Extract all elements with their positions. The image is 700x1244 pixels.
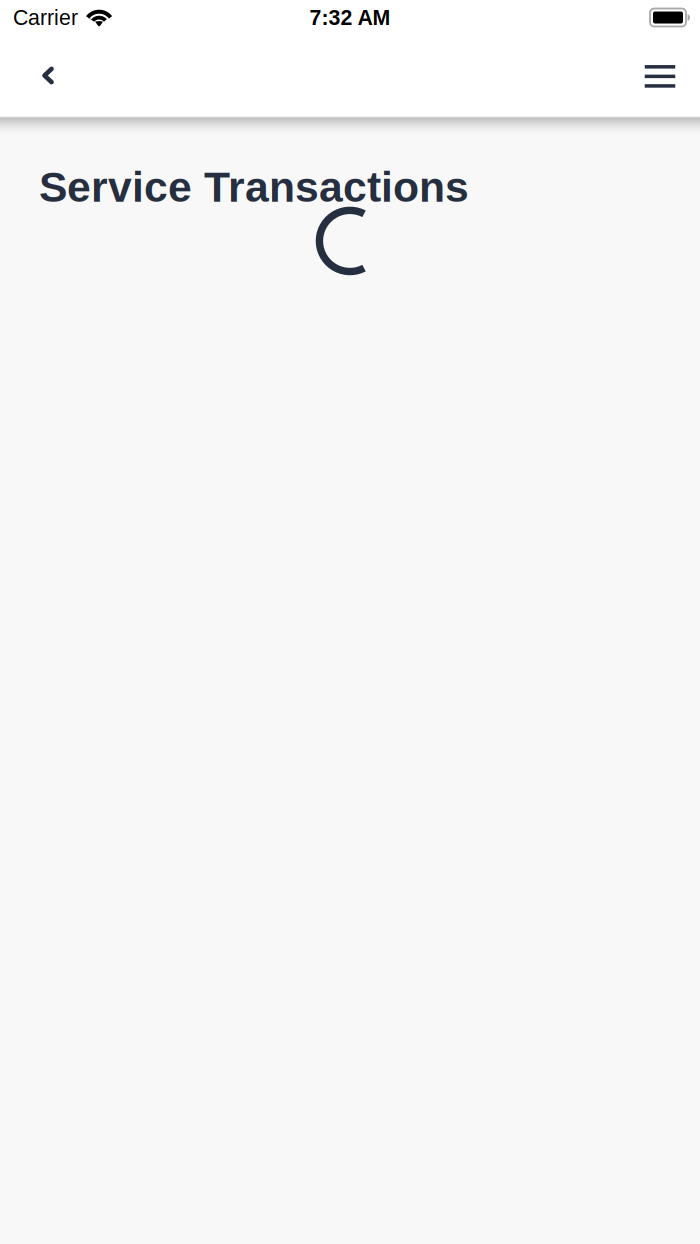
staticText: 7:32 AM (309, 6, 390, 29)
staticText: Service Transactions (39, 163, 469, 211)
button[interactable]: Menu (638, 53, 682, 97)
staticText: Carrier (13, 6, 78, 29)
button[interactable]: Back (26, 53, 70, 97)
